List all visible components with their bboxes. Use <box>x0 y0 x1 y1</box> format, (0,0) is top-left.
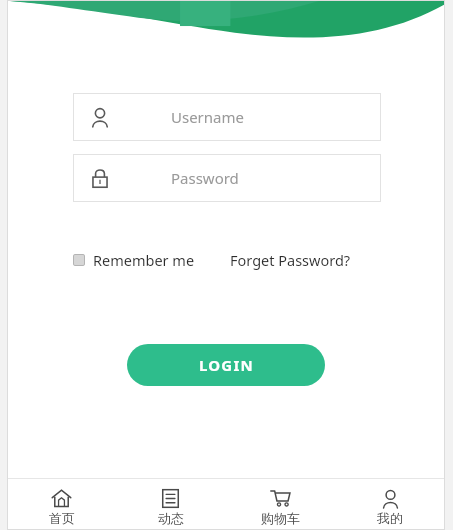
button[interactable]: 动态 <box>116 484 225 526</box>
button[interactable]: 首页 <box>7 484 116 526</box>
button[interactable]: LOGIN <box>127 344 325 386</box>
button[interactable]: 我的 <box>335 484 445 526</box>
button[interactable]: 购物车 <box>225 484 335 526</box>
button[interactable]: Remember me <box>73 250 195 270</box>
staticText: 购物车 <box>261 510 300 526</box>
staticText: 动态 <box>158 510 184 526</box>
staticText: Password <box>171 168 239 188</box>
staticText: LOGIN <box>199 355 254 375</box>
staticText: 首页 <box>49 510 75 526</box>
button[interactable]: Forget Password? <box>230 250 351 270</box>
staticText: Remember me <box>93 250 195 270</box>
staticText: 我的 <box>377 510 403 526</box>
staticText: Forget Password? <box>230 250 351 270</box>
button[interactable]: Username <box>73 93 381 141</box>
staticText: Username <box>171 107 244 127</box>
button[interactable]: Password <box>73 154 381 202</box>
